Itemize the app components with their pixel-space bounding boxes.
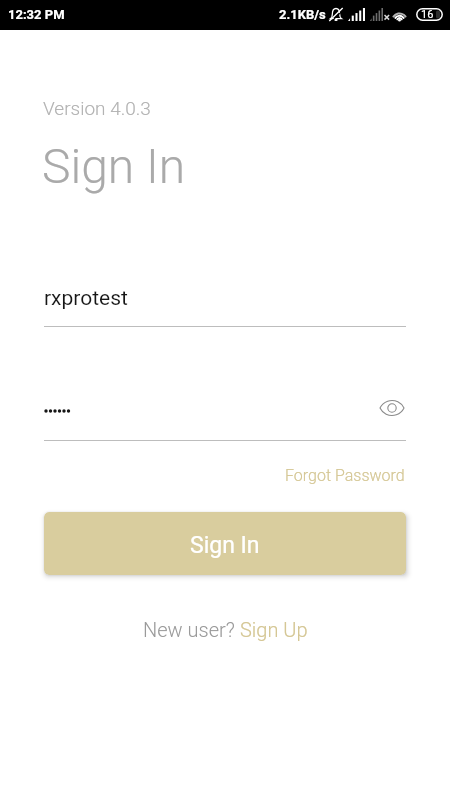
button[interactable]: Sign In [44,512,406,575]
staticText: 16 [421,8,434,21]
button[interactable]: Forgot Password [280,463,410,488]
button[interactable]: rxprotest [44,279,406,327]
staticText: Sign Up [240,618,308,641]
staticText: Version 4.0.3 [43,97,151,119]
staticText: New user? [143,618,240,641]
staticText: rxprotest [44,286,128,311]
button[interactable]: Show password [44,392,406,441]
button[interactable]: Show password [374,392,410,424]
button[interactable]: Sign Up [240,618,308,641]
staticText: 2.1KB/s [279,7,326,22]
staticText: Sign In [190,532,260,559]
staticText: Sign In [42,138,186,194]
staticText: 12:32 PM [8,7,65,22]
staticText: Forgot Password [285,466,405,485]
